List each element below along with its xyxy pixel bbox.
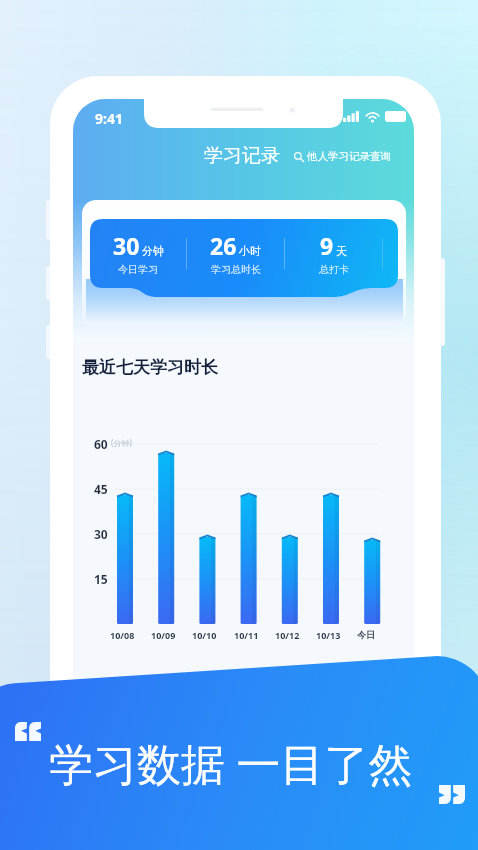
staticText: 10/11 [234, 629, 259, 641]
staticText: 26 [210, 230, 237, 261]
staticText: 小时 [239, 244, 261, 258]
button[interactable]: 30 [90, 219, 398, 297]
staticText: 9 [320, 230, 334, 261]
staticText: 学习数据 一目了然 [49, 733, 413, 793]
button[interactable]: 他人学习记录查询 [294, 150, 391, 163]
staticText: (分钟) [111, 437, 132, 448]
staticText: 45 [94, 481, 108, 497]
staticText: 总打卡 [319, 263, 349, 276]
staticText: 10/12 [275, 629, 300, 641]
button[interactable]: 学习记录 [204, 144, 280, 168]
staticText: 他人学习记录查询 [307, 150, 391, 163]
staticText: 最近七天学习时长 [82, 357, 218, 378]
staticText: 天 [336, 244, 347, 258]
staticText: 10/13 [316, 629, 341, 641]
staticText: 15 [94, 571, 108, 587]
staticText: 30 [94, 526, 108, 542]
staticText: 9:41 [95, 109, 123, 128]
staticText: 30 [113, 230, 140, 261]
staticText: 10/10 [192, 629, 217, 641]
staticText: 10/08 [110, 629, 135, 641]
staticText: 今日 [357, 629, 375, 640]
staticText: 学习总时长 [211, 263, 261, 276]
staticText: 今日学习 [118, 263, 158, 276]
staticText: 10/09 [151, 629, 176, 641]
staticText: 60 [94, 436, 108, 452]
staticText: 分钟 [142, 244, 164, 258]
